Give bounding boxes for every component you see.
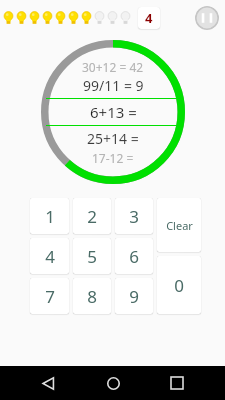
staticText: 17-12 = [92, 150, 134, 166]
button[interactable]: 7 [30, 278, 69, 314]
staticText: 0 [174, 274, 184, 297]
staticText: 8 [87, 285, 97, 308]
staticText: 7 [45, 285, 55, 308]
button[interactable]: 5 [73, 238, 111, 274]
button[interactable]: 4 [30, 238, 69, 274]
staticText: 6+13 = [90, 102, 137, 122]
button[interactable]: Back [31, 366, 65, 400]
button[interactable]: 6 [115, 238, 153, 274]
staticText: 4 [145, 9, 153, 27]
staticText: 4 [45, 245, 55, 268]
staticText: 1 [45, 205, 55, 228]
button[interactable]: 8 [73, 278, 111, 314]
staticText: 2 [87, 205, 97, 228]
button[interactable]: 2 [73, 198, 111, 234]
staticText: 99/11 = 9 [83, 76, 144, 95]
staticText: 3 [129, 205, 139, 228]
staticText: 30+12 = 42 [82, 59, 144, 75]
button[interactable]: Recent apps [160, 366, 194, 400]
button[interactable]: 1 [30, 198, 69, 234]
button[interactable]: 4 [138, 7, 160, 29]
staticText: 6 [129, 245, 139, 268]
staticText: Clear [166, 218, 193, 233]
button[interactable]: Pause [195, 6, 219, 30]
staticText: 25+14 = [87, 129, 139, 148]
staticText: 5 [87, 245, 97, 268]
button[interactable]: Clear [157, 198, 201, 252]
button[interactable]: 3 [115, 198, 153, 234]
button[interactable]: 9 [115, 278, 153, 314]
button[interactable]: 0 [157, 256, 201, 314]
staticText: 9 [129, 285, 139, 308]
button[interactable]: Home [96, 366, 130, 400]
